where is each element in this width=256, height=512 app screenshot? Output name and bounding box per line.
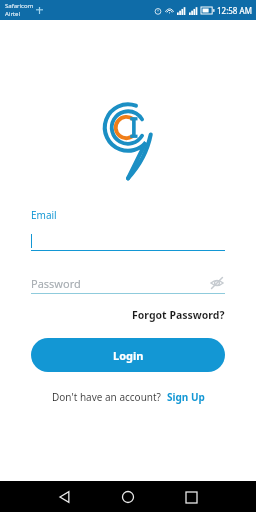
staticText: 12:58 AM xyxy=(217,5,252,16)
button[interactable]: Sign Up xyxy=(167,388,205,406)
button[interactable]: Show password xyxy=(209,275,225,291)
staticText: Don't have an account? xyxy=(52,390,161,404)
staticText: Email xyxy=(31,208,57,222)
button[interactable]: Back xyxy=(52,484,78,510)
staticText: Airtel xyxy=(5,10,20,18)
button[interactable] xyxy=(31,232,225,250)
button[interactable]: Home xyxy=(115,484,141,510)
button[interactable]: Recents xyxy=(178,484,204,510)
button[interactable]: Login xyxy=(31,338,225,372)
button[interactable]: Password xyxy=(31,273,225,293)
staticText: Password xyxy=(31,276,209,291)
staticText: Safaricom xyxy=(5,2,34,10)
staticText: Login xyxy=(113,348,144,363)
button[interactable]: Forgot Password? xyxy=(132,306,225,324)
